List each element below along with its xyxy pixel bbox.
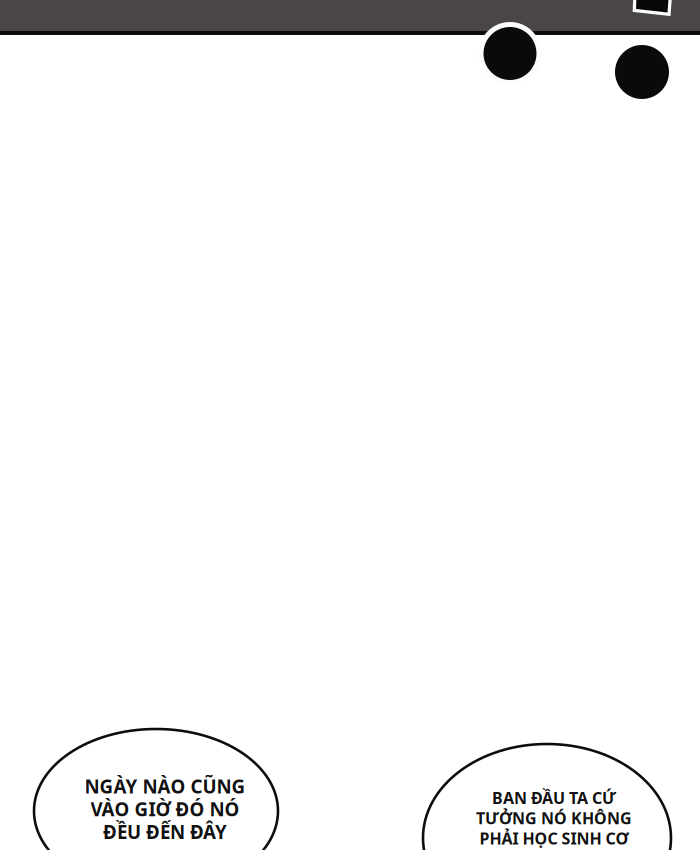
staticText: ĐỀU ĐẾN ĐÂY [103, 819, 227, 844]
staticText: NGÀY NÀO CŨNG [84, 774, 245, 799]
staticText: BAN ĐẦU TA CỨ [492, 787, 616, 808]
staticText: PHẢI HỌC SINH CƠ [479, 828, 628, 849]
staticText: VÀO GIỜ ĐÓ NÓ [90, 797, 239, 821]
button[interactable]: NGÀY NÀO CŨNG [0, 0, 700, 850]
staticText: TƯỞNG NÓ KHÔNG [476, 807, 632, 829]
